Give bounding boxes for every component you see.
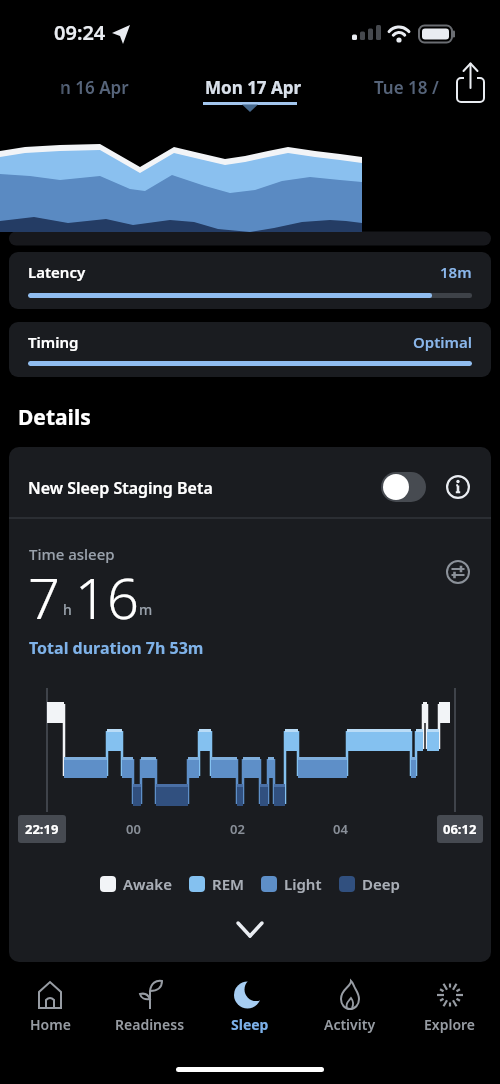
staticText: Timing (28, 332, 79, 352)
staticText: Sleep (231, 1015, 269, 1034)
button[interactable]: Timing (9, 322, 491, 377)
staticText: Details (18, 403, 91, 432)
staticText: Mon 17 Apr (205, 76, 302, 99)
staticText: Light (284, 874, 322, 894)
staticText: REM (212, 874, 244, 894)
staticText: 16 (75, 559, 139, 635)
staticText: Deep (362, 874, 400, 894)
staticText: Tue 18 / (374, 76, 439, 99)
button[interactable] (446, 560, 470, 584)
button[interactable] (225, 912, 275, 942)
button[interactable]: Readiness (100, 965, 200, 1045)
staticText: Activity (324, 1015, 376, 1034)
button[interactable]: n 16 Apr (0, 70, 150, 110)
staticText: h (63, 600, 72, 619)
staticText: Total duration 7h 53m (29, 637, 204, 659)
button[interactable]: Explore (400, 965, 500, 1045)
button[interactable]: Tue 18 / (370, 70, 455, 110)
staticText: m (139, 600, 153, 619)
staticText: 06:12 (443, 820, 477, 838)
staticText: Latency (28, 262, 86, 282)
button[interactable]: Activity (300, 965, 400, 1045)
staticText: Optimal (413, 332, 472, 352)
staticText: New Sleep Staging Beta (28, 477, 213, 499)
staticText: 18m (440, 262, 472, 282)
staticText: Explore (424, 1015, 476, 1034)
staticText: Time asleep (29, 544, 115, 564)
staticText: Home (30, 1015, 71, 1034)
button[interactable]: Latency (9, 252, 491, 309)
staticText: 7 (28, 559, 60, 635)
button[interactable] (446, 475, 470, 499)
staticText: 09:24 (54, 19, 106, 46)
staticText: n 16 Apr (60, 76, 129, 99)
staticText: 02 (230, 820, 245, 838)
button[interactable] (381, 472, 426, 502)
button[interactable]: Sleep (200, 965, 300, 1045)
staticText: 22:19 (25, 820, 59, 838)
staticText: Awake (123, 874, 172, 894)
staticText: 04 (333, 820, 348, 838)
button[interactable] (450, 60, 495, 108)
staticText: 00 (126, 820, 141, 838)
button[interactable]: Mon 17 Apr (195, 70, 305, 118)
button[interactable]: Home (0, 965, 100, 1045)
staticText: Readiness (115, 1015, 185, 1034)
